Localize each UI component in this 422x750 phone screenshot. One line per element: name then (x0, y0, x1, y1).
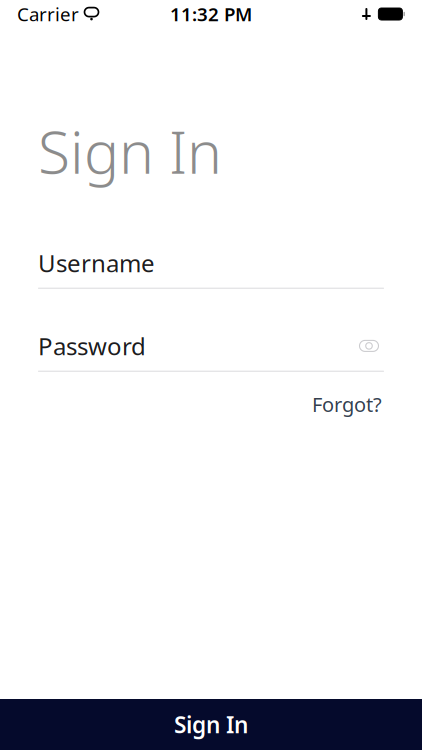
staticText: Username (38, 247, 155, 279)
staticText: Sign In (38, 112, 222, 190)
staticText: Forgot? (312, 391, 382, 417)
staticText: 11:32 PM (170, 2, 252, 26)
button[interactable]: Sign In (0, 699, 422, 750)
button[interactable]: Forgot? (310, 387, 384, 421)
staticText: Carrier (17, 2, 79, 26)
staticText: Password (38, 330, 146, 362)
button[interactable]: Show password (354, 334, 384, 358)
staticText: Sign In (174, 709, 248, 739)
